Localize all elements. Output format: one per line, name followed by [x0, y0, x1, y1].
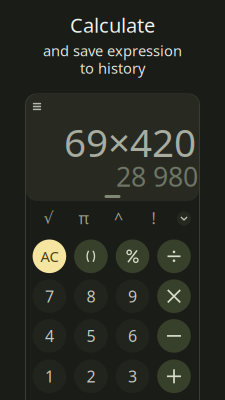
- staticText: !: [151, 207, 155, 229]
- button[interactable]: 4: [33, 319, 66, 353]
- staticText: to history: [80, 58, 145, 78]
- staticText: 4: [45, 325, 54, 346]
- button[interactable]: 9: [116, 279, 149, 313]
- button[interactable]: 3: [116, 359, 149, 393]
- button[interactable]: Menu: [28, 98, 46, 114]
- button[interactable]: Parentheses: [74, 239, 108, 273]
- button[interactable]: AC: [33, 239, 66, 273]
- button[interactable]: 1: [33, 359, 66, 393]
- staticText: π: [78, 207, 88, 229]
- button[interactable]: π: [68, 206, 98, 230]
- button[interactable]: 5: [74, 319, 108, 353]
- button[interactable]: 6: [116, 319, 149, 353]
- button[interactable]: More functions: [173, 207, 195, 229]
- button[interactable]: !: [138, 206, 168, 230]
- staticText: 8: [86, 286, 95, 307]
- staticText: Calculate: [70, 12, 155, 38]
- button[interactable]: Multiply: [157, 279, 191, 313]
- button[interactable]: ^: [103, 206, 133, 230]
- staticText: 69×420: [64, 116, 196, 168]
- staticText: 9: [128, 286, 137, 307]
- button[interactable]: Percent: [116, 239, 149, 273]
- button[interactable]: Add: [157, 359, 191, 393]
- staticText: 1: [45, 366, 54, 387]
- staticText: 28 980: [116, 159, 198, 194]
- button[interactable]: 7: [33, 279, 66, 313]
- staticText: 3: [128, 366, 137, 387]
- button[interactable]: 8: [74, 279, 108, 313]
- staticText: 6: [128, 325, 137, 346]
- button[interactable]: Divide: [157, 239, 191, 273]
- staticText: √: [43, 209, 53, 227]
- staticText: 7: [45, 286, 54, 307]
- staticText: ^: [114, 207, 123, 229]
- staticText: 2: [86, 366, 95, 387]
- button[interactable]: Subtract: [157, 319, 191, 353]
- button[interactable]: √: [33, 206, 63, 230]
- staticText: and save expression: [43, 41, 182, 60]
- button[interactable]: 2: [74, 359, 108, 393]
- staticText: AC: [40, 247, 58, 266]
- staticText: 5: [86, 325, 95, 346]
